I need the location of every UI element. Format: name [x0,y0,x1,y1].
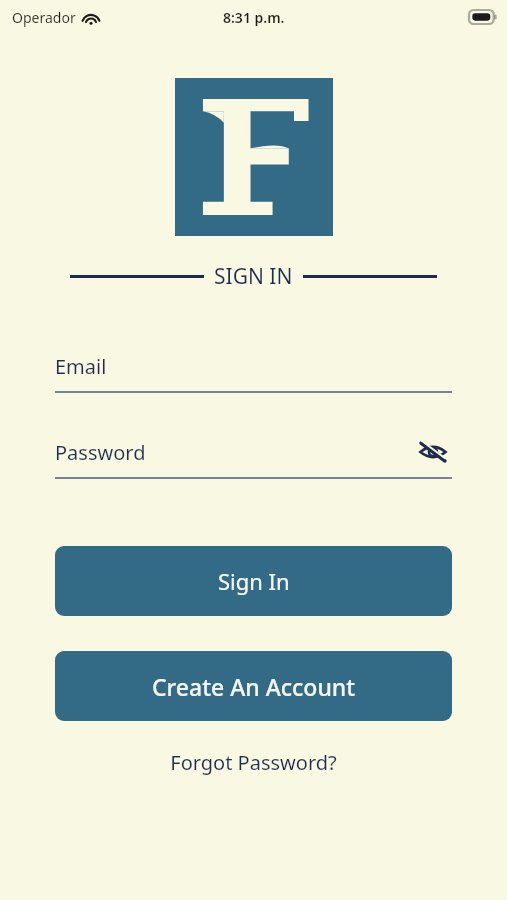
staticText: 8:31 p.m. [223,8,285,27]
staticText: Operador [12,8,76,27]
button[interactable]: Create An Account [55,651,452,721]
button[interactable]: Sign In [55,546,452,616]
staticText: Email [55,353,107,380]
staticText: Sign In [218,566,290,596]
staticText: Create An Account [152,671,356,702]
staticText: SIGN IN [214,262,293,291]
button[interactable]: Show password [414,433,452,471]
staticText: Forgot Password? [170,749,337,776]
staticText: Password [55,439,146,466]
button[interactable]: Forgot Password? [156,743,351,782]
button[interactable]: Password [55,433,452,471]
button[interactable]: Email [55,353,452,393]
